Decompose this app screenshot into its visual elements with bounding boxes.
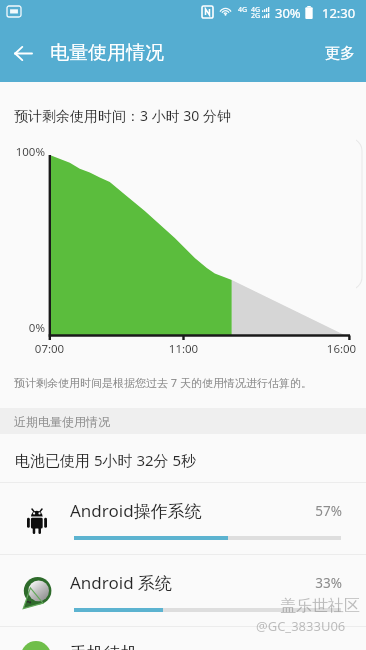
staticText: Android 系统	[70, 571, 173, 594]
staticText: 100%	[0, 144, 45, 160]
button[interactable]: Android 系统	[0, 554, 366, 626]
staticText: 近期电量使用情况	[14, 414, 110, 429]
staticText: 07:00	[27, 341, 72, 357]
button[interactable]: 更多	[309, 32, 366, 75]
staticText: 57%	[296, 502, 342, 520]
staticText: 预计剩余使用时间：3 小时 30 分钟	[14, 106, 231, 125]
staticText: 电池已使用 5小时 32分 5秒	[15, 450, 197, 470]
staticText: 手机待机	[70, 643, 138, 650]
staticText: 更多	[325, 44, 355, 63]
staticText: 4G	[251, 5, 261, 15]
staticText: 盖乐世社区	[280, 596, 360, 616]
staticText: 11:00	[161, 341, 206, 357]
staticText: 16:00	[319, 341, 364, 357]
staticText: 2G	[251, 11, 261, 21]
staticText: 30%	[275, 4, 301, 22]
staticText: 0%	[0, 320, 45, 336]
staticText: Android操作系统	[70, 499, 202, 522]
button[interactable]: 手机待机	[0, 626, 366, 650]
staticText: @GC_3833U06	[256, 617, 346, 635]
staticText: 预计剩余使用时间是根据您过去 7 天的使用情况进行估算的。	[14, 375, 313, 390]
staticText: 12:30	[322, 4, 356, 22]
staticText: 4G	[238, 5, 248, 15]
staticText: 33%	[296, 574, 342, 592]
button[interactable]: Android操作系统	[0, 482, 366, 554]
staticText: 电量使用情况	[50, 41, 164, 65]
button[interactable]: Back	[0, 24, 46, 82]
